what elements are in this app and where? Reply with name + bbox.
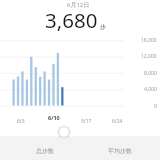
staticText: 5/17 — [81, 118, 92, 125]
staticText: 6月12日 — [67, 1, 90, 9]
staticText: 4,000 — [144, 86, 157, 93]
staticText: 步 — [100, 23, 106, 31]
staticText: 平均步数 — [108, 147, 132, 155]
staticText: 16,000 — [141, 37, 157, 44]
staticText: 6/10 — [48, 114, 60, 121]
staticText: 0 — [154, 103, 157, 110]
button[interactable]: 平均步数 — [80, 136, 160, 160]
button[interactable]: 总步数 — [0, 136, 80, 160]
staticText: 3,680 — [45, 6, 98, 34]
staticText: 12,000 — [141, 53, 157, 60]
staticText: 6/3 — [17, 118, 25, 125]
staticText: 8,000 — [144, 70, 157, 77]
staticText: 6/24 — [112, 118, 123, 125]
button[interactable]: Scrub handle — [56, 124, 72, 140]
staticText: 总步数 — [36, 147, 54, 155]
